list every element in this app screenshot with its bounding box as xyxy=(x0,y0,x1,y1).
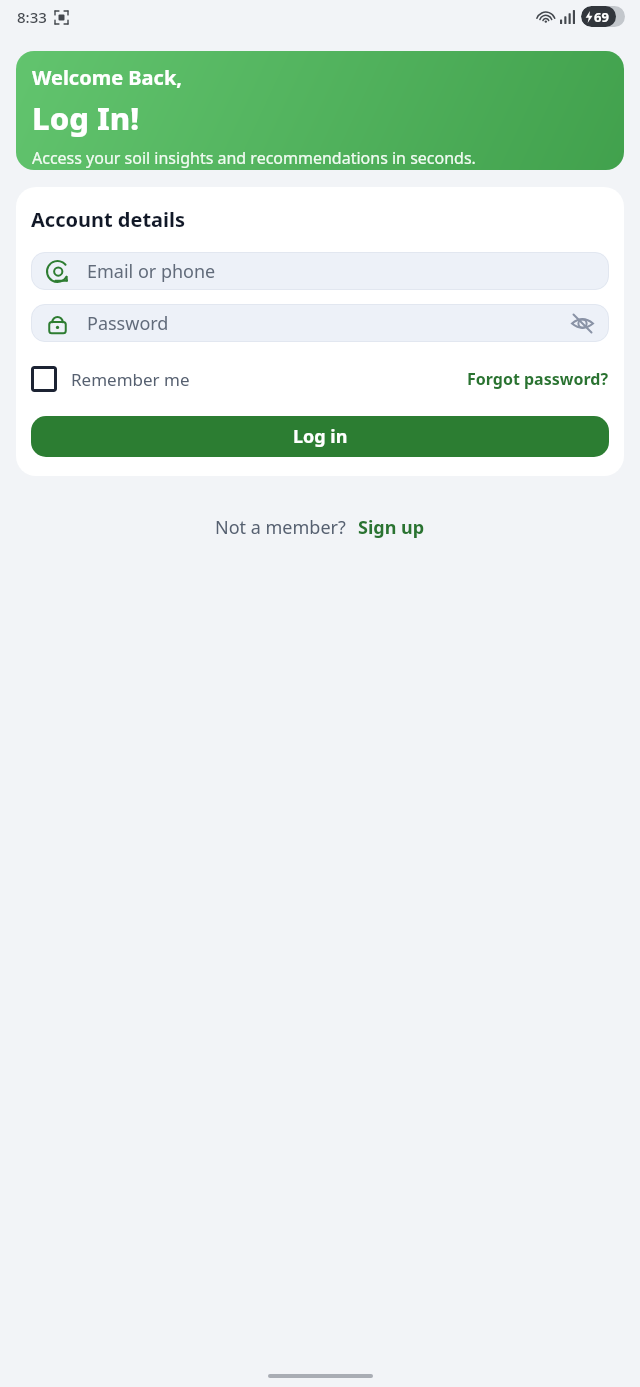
staticText: Log In! xyxy=(32,97,140,139)
button[interactable]: Show password xyxy=(569,310,595,336)
button[interactable]: Email or phone xyxy=(31,252,609,290)
staticText: Password xyxy=(87,311,169,336)
staticText: Access your soil insights and recommenda… xyxy=(32,147,476,169)
button[interactable]: Remember me xyxy=(31,362,190,396)
staticText: 69 xyxy=(594,8,609,26)
staticText: 8:33 xyxy=(17,7,47,27)
staticText: Account details xyxy=(31,206,186,233)
button[interactable]: Log in xyxy=(31,416,609,457)
staticText: Forgot password? xyxy=(467,368,609,390)
button[interactable]: Forgot password? xyxy=(467,364,609,394)
button[interactable]: Password xyxy=(31,304,609,342)
staticText: Remember me xyxy=(71,368,190,391)
staticText: Email or phone xyxy=(87,259,216,284)
staticText: Not a member? xyxy=(215,515,346,540)
button[interactable]: Sign up xyxy=(358,512,425,543)
staticText: Sign up xyxy=(358,515,425,540)
staticText: Welcome Back, xyxy=(32,64,182,91)
staticText: Log in xyxy=(293,424,348,449)
